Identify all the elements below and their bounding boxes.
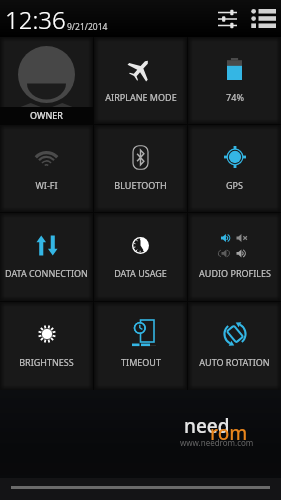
- button[interactable]: AUTO ROTATION: [188, 302, 281, 390]
- button[interactable]: TIMEOUT: [94, 302, 187, 390]
- staticText: 74%: [226, 91, 244, 103]
- staticText: AIRPLANE MODE: [105, 91, 177, 103]
- staticText: BLUETOOTH: [114, 179, 167, 191]
- button[interactable]: BLUETOOTH: [94, 125, 187, 212]
- button[interactable]: 74%: [188, 37, 281, 124]
- staticText: BRIGHTNESS: [19, 356, 74, 368]
- button[interactable]: DATA USAGE: [94, 213, 187, 301]
- staticText: DATA CONNECTION: [5, 267, 88, 279]
- staticText: OWNER: [30, 109, 63, 121]
- staticText: TIMEOUT: [121, 356, 161, 368]
- staticText: need: [184, 413, 230, 439]
- staticText: rom: [210, 420, 248, 446]
- staticText: WI-FI: [35, 179, 58, 191]
- button[interactable]: Notifications list: [251, 9, 276, 28]
- button[interactable]: AIRPLANE MODE: [94, 37, 187, 124]
- staticText: GPS: [226, 179, 243, 191]
- staticText: 9/21/2014: [67, 21, 108, 33]
- staticText: AUDIO PROFILES: [199, 267, 271, 279]
- button[interactable]: GPS: [188, 125, 281, 212]
- button[interactable]: OWNER: [0, 37, 93, 124]
- staticText: AUTO ROTATION: [199, 356, 270, 368]
- button[interactable]: Settings: [218, 10, 237, 28]
- button[interactable]: AUDIO PROFILES: [188, 213, 281, 301]
- staticText: www.needrom.com: [180, 437, 254, 448]
- staticText: DATA USAGE: [114, 267, 167, 279]
- staticText: 12:36: [5, 3, 66, 36]
- button[interactable]: DATA CONNECTION: [0, 213, 93, 301]
- button[interactable]: BRIGHTNESS: [0, 302, 93, 390]
- button[interactable]: WI-FI: [0, 125, 93, 212]
